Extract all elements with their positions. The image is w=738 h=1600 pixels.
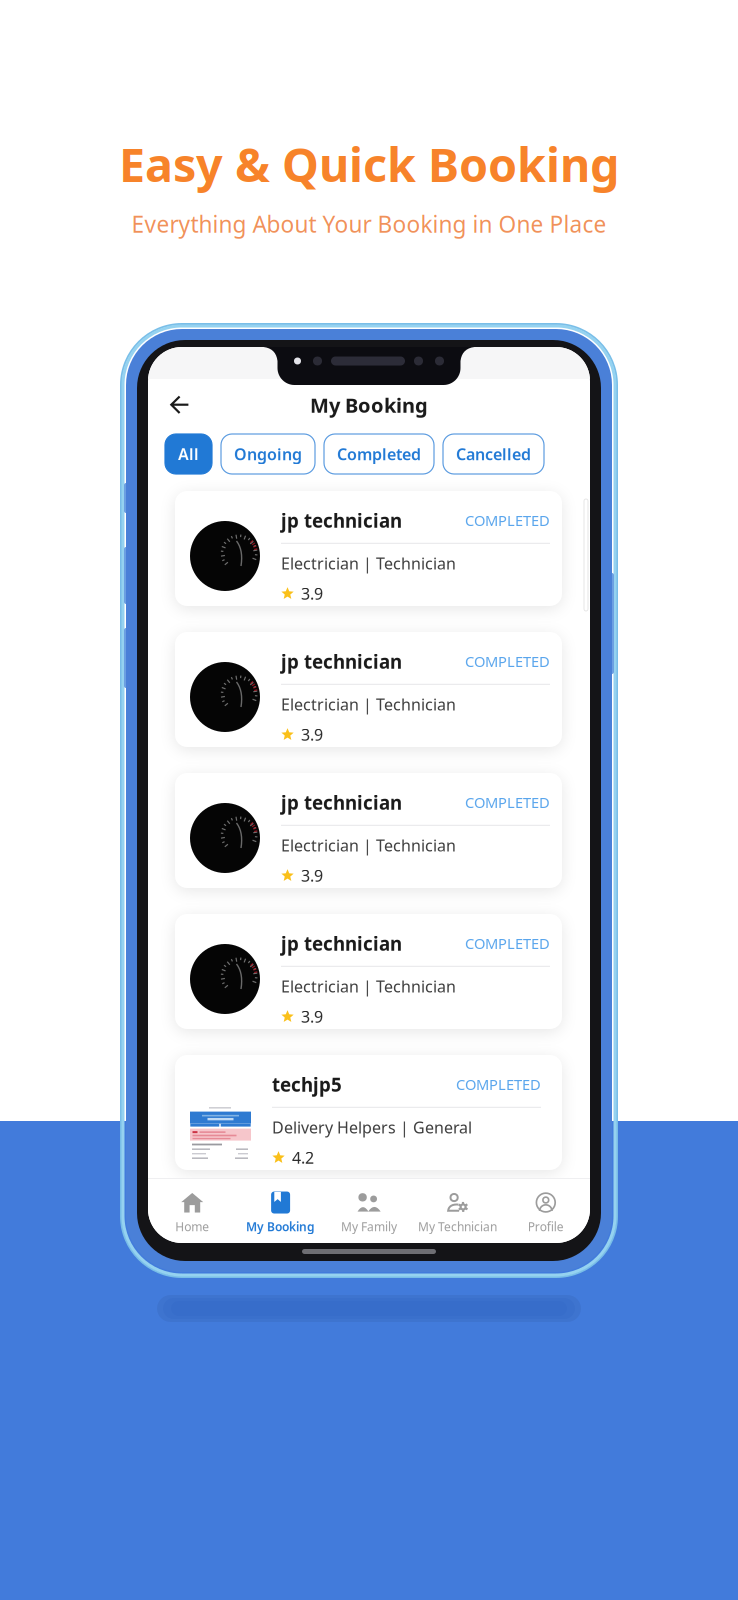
staticText: Electrician | Technician (281, 835, 456, 856)
button[interactable]: Back (148, 384, 203, 425)
staticText: COMPLETED (465, 934, 550, 953)
staticText: All (178, 443, 199, 465)
staticText: Easy & Quick Booking (119, 133, 619, 195)
staticText: Cancelled (456, 443, 531, 465)
button[interactable]: All (165, 434, 212, 474)
staticText: My Family (341, 1218, 397, 1234)
button[interactable]: jp technician (175, 773, 562, 888)
staticText: 3.9 (301, 724, 323, 745)
staticText: Electrician | Technician (281, 694, 456, 715)
staticText: jp technician (281, 790, 402, 815)
button[interactable]: techjp5 (175, 1055, 562, 1170)
button[interactable]: jp technician (175, 632, 562, 747)
staticText: COMPLETED (465, 511, 550, 530)
staticText: COMPLETED (465, 793, 550, 812)
staticText: 4.2 (292, 1147, 314, 1168)
staticText: 3.9 (301, 1006, 323, 1027)
staticText: Delivery Helpers | General (272, 1117, 472, 1138)
button[interactable]: Completed (324, 434, 434, 474)
staticText: Electrician | Technician (281, 976, 456, 997)
button[interactable]: My Family (325, 1177, 413, 1244)
staticText: jp technician (281, 931, 402, 956)
button[interactable]: Profile (502, 1177, 590, 1244)
button[interactable]: Ongoing (221, 434, 315, 474)
button[interactable]: My Technician (413, 1177, 502, 1244)
staticText: Electrician | Technician (281, 553, 456, 574)
button[interactable]: Cancelled (443, 434, 544, 474)
staticText: jp technician (281, 649, 402, 674)
staticText: Home (175, 1218, 209, 1234)
button[interactable]: My Booking (236, 1177, 325, 1244)
staticText: COMPLETED (465, 652, 550, 671)
staticText: My Booking (310, 392, 428, 418)
staticText: COMPLETED (456, 1075, 541, 1094)
staticText: jp technician (281, 508, 402, 533)
staticText: Profile (528, 1218, 564, 1234)
button[interactable]: jp technician (175, 491, 562, 606)
staticText: 3.9 (301, 865, 323, 886)
staticText: My Booking (246, 1218, 315, 1234)
staticText: My Technician (418, 1218, 497, 1234)
button[interactable]: Home (148, 1177, 236, 1244)
staticText: 3.9 (301, 583, 323, 604)
button[interactable]: jp technician (175, 914, 562, 1029)
staticText: Everything About Your Booking in One Pla… (131, 209, 606, 239)
staticText: Completed (337, 443, 421, 465)
staticText: techjp5 (272, 1072, 342, 1097)
staticText: Ongoing (234, 443, 302, 465)
